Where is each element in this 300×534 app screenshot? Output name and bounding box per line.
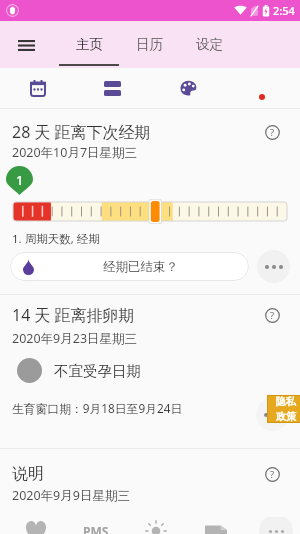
button[interactable]: Calendar xyxy=(0,68,76,108)
staticText: 设定 xyxy=(196,36,223,53)
staticText: 1. 周期天数, 经期 xyxy=(12,231,100,247)
button[interactable]: Favourites xyxy=(6,517,66,534)
button[interactable]: PMS xyxy=(66,517,126,534)
staticText: 2020年9月23日星期三 xyxy=(12,330,138,347)
staticText: 2:54 xyxy=(273,3,295,18)
staticText: 政策 xyxy=(276,410,296,423)
staticText: 2020年10月7日星期三 xyxy=(12,144,138,161)
staticText: PMS xyxy=(83,523,109,534)
staticText: 隐私 xyxy=(276,395,296,408)
staticText: ? xyxy=(270,309,275,322)
staticText: 经期已结束？ xyxy=(103,259,178,275)
button[interactable]: 日历 xyxy=(119,21,179,68)
button[interactable]: 主页 xyxy=(59,21,119,68)
button[interactable]: 经期已结束？ xyxy=(10,252,249,281)
button[interactable]: More xyxy=(246,517,300,534)
button[interactable]: Theme xyxy=(150,68,226,108)
button[interactable]: 设定 xyxy=(179,21,239,68)
staticText: 不宜受孕日期 xyxy=(54,362,141,380)
staticText: ? xyxy=(270,126,275,139)
button[interactable]: Help xyxy=(259,461,285,487)
staticText: 28 天 距离下次经期 xyxy=(12,121,259,143)
button[interactable]: Menu xyxy=(6,25,46,65)
button[interactable]: Help xyxy=(259,302,285,328)
button[interactable]: Cycle list xyxy=(74,68,150,108)
staticText: ? xyxy=(270,468,275,481)
button[interactable]: Privacy policy xyxy=(267,395,300,423)
button[interactable]: Help xyxy=(259,119,285,145)
staticText: 说明 xyxy=(12,464,259,484)
staticText: 主页 xyxy=(76,36,103,53)
staticText: 2020年9月9日星期三 xyxy=(12,487,130,504)
button[interactable]: New xyxy=(224,68,300,108)
button[interactable]: Symptoms xyxy=(126,517,186,534)
button[interactable]: More options xyxy=(257,250,290,283)
staticText: 生育窗口期：9月18日至9月24日 xyxy=(12,400,183,416)
staticText: 1 xyxy=(16,171,24,189)
staticText: 14 天 距离排卵期 xyxy=(12,304,259,326)
button[interactable]: Notes xyxy=(186,517,246,534)
staticText: 日历 xyxy=(136,36,163,53)
button[interactable]: More options xyxy=(256,398,289,431)
